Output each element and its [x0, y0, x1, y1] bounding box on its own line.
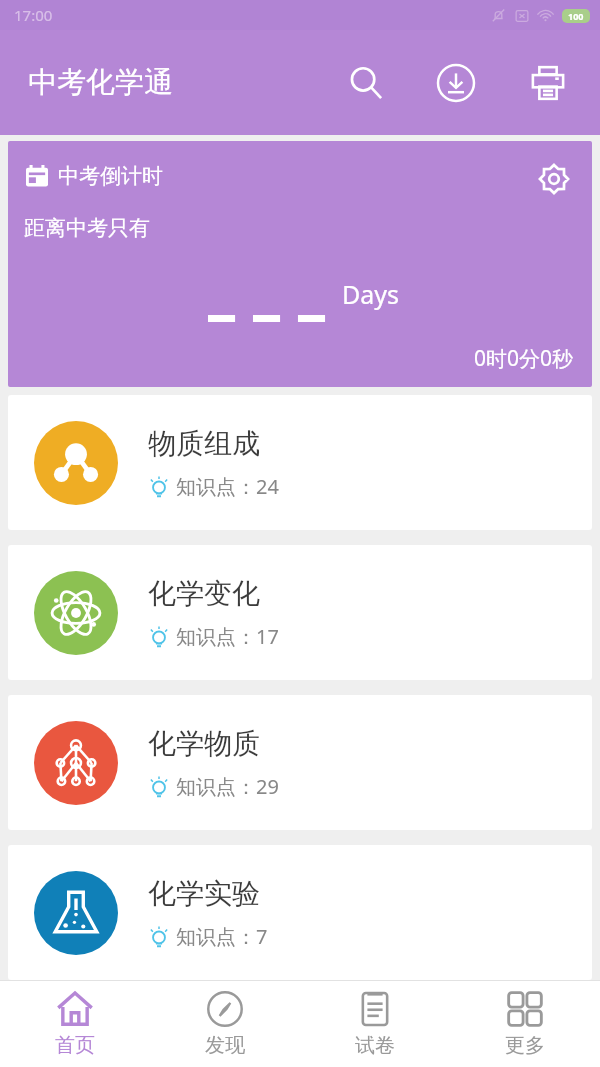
staticText: 100	[568, 10, 584, 22]
staticText: 化学物质	[148, 726, 260, 761]
button[interactable]: Settings	[532, 157, 576, 201]
button[interactable]: 试卷	[300, 981, 450, 1067]
staticText: 知识点：24	[176, 473, 279, 500]
button[interactable]: Print	[520, 55, 576, 111]
staticText: 更多	[505, 1033, 545, 1058]
button[interactable]: Search	[338, 55, 394, 111]
staticText: 中考化学通	[28, 64, 173, 101]
staticText: 试卷	[355, 1033, 395, 1058]
button[interactable]: 化学实验	[8, 845, 592, 980]
button[interactable]: 物质组成	[8, 395, 592, 530]
staticText: 发现	[205, 1033, 245, 1058]
staticText: Days	[342, 277, 400, 311]
button[interactable]: 化学物质	[8, 695, 592, 830]
staticText: 化学实验	[148, 876, 260, 911]
button[interactable]: 化学变化	[8, 545, 592, 680]
staticText: 首页	[55, 1033, 95, 1058]
staticText: 中考倒计时	[58, 163, 163, 189]
staticText: 0时0分0秒	[474, 344, 574, 373]
staticText: 17:00	[14, 5, 53, 25]
button[interactable]: 发现	[150, 981, 300, 1067]
staticText: 化学变化	[148, 576, 260, 611]
staticText: 距离中考只有	[24, 215, 150, 241]
button[interactable]: 更多	[450, 981, 600, 1067]
staticText: 知识点：7	[176, 923, 268, 950]
staticText: 知识点：29	[176, 773, 279, 800]
staticText: 知识点：17	[176, 623, 279, 650]
button[interactable]: Download	[428, 55, 484, 111]
staticText: 物质组成	[148, 426, 260, 461]
button[interactable]: 首页	[0, 981, 150, 1067]
button[interactable]: 中考倒计时	[8, 141, 592, 387]
